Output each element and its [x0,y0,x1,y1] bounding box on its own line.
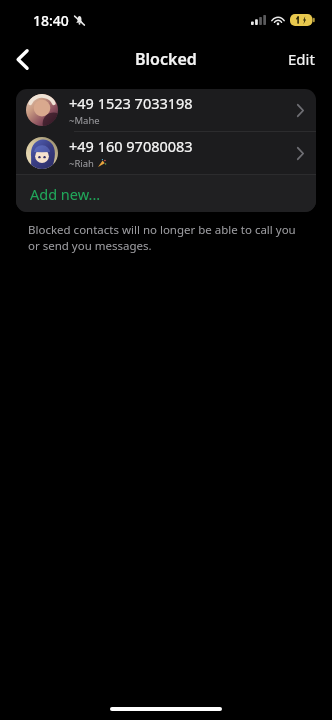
staticText: Blocked contacts will no longer be able … [28,222,308,253]
staticText: Edit [288,49,315,69]
button[interactable]: Back [0,40,44,78]
staticText: Add new... [30,184,101,204]
staticText: ~Riah [69,157,94,170]
staticText: +49 160 97080083 [69,136,193,156]
button[interactable]: +49 1523 7033198 [16,89,316,131]
button[interactable]: Edit [271,43,332,75]
staticText: 18:40 [33,11,69,30]
staticText: Blocked [135,48,197,70]
button[interactable]: Add new... [16,175,316,212]
staticText: ~Mahe [69,114,100,127]
button[interactable]: +49 160 97080083 [16,132,316,174]
staticText: +49 1523 7033198 [69,93,193,113]
